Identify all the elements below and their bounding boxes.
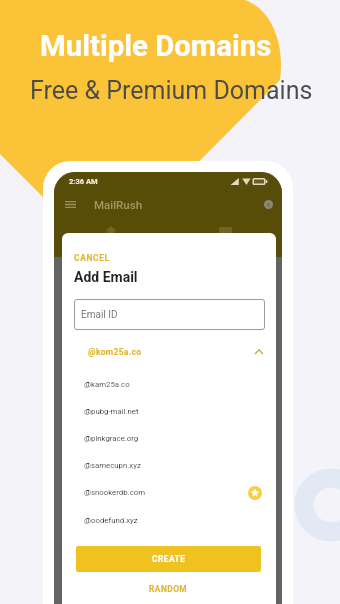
staticText: Free & Premium Domains — [30, 76, 313, 105]
button[interactable]: CREATE — [76, 546, 261, 572]
button[interactable]: Favourite domain — [245, 479, 265, 506]
button[interactable]: Open navigation drawer — [59, 194, 81, 215]
staticText: @snookerdb.com — [84, 488, 146, 497]
button[interactable]: Mail tab — [168, 220, 282, 257]
staticText: @oodefund.xyz — [84, 516, 138, 525]
staticText: Add Email — [74, 269, 138, 285]
button[interactable]: Home tab — [54, 220, 168, 257]
button[interactable]: @samecupn.xyz — [74, 452, 265, 479]
button[interactable]: @pinkgrace.org — [74, 425, 265, 452]
button[interactable]: @pubg-mail.net — [74, 398, 265, 425]
staticText: @samecupn.xyz — [84, 461, 141, 470]
staticText: RANDOM — [149, 584, 188, 594]
staticText: Multiple Domains — [40, 29, 272, 63]
staticText: MailRush — [94, 198, 143, 211]
button[interactable]: @kom25a.co — [74, 339, 265, 364]
button[interactable]: RANDOM — [76, 576, 261, 602]
staticText: @pinkgrace.org — [84, 434, 139, 443]
button[interactable]: @oodefund.xyz — [74, 507, 265, 534]
button[interactable]: @snookerdb.com — [74, 479, 265, 506]
button[interactable]: CANCEL — [74, 248, 110, 267]
button[interactable]: @kam25a.co — [74, 371, 265, 398]
staticText: @pubg-mail.net — [84, 407, 139, 416]
staticText: @kom25a.co — [88, 347, 142, 357]
button[interactable]: Email ID — [74, 299, 265, 330]
staticText: @kam25a.co — [84, 380, 130, 389]
staticText: CREATE — [152, 554, 186, 564]
button[interactable]: Information — [258, 194, 278, 215]
staticText: 2:36 AM — [69, 177, 98, 186]
staticText: CANCEL — [74, 253, 110, 263]
staticText: Email ID — [81, 309, 118, 321]
